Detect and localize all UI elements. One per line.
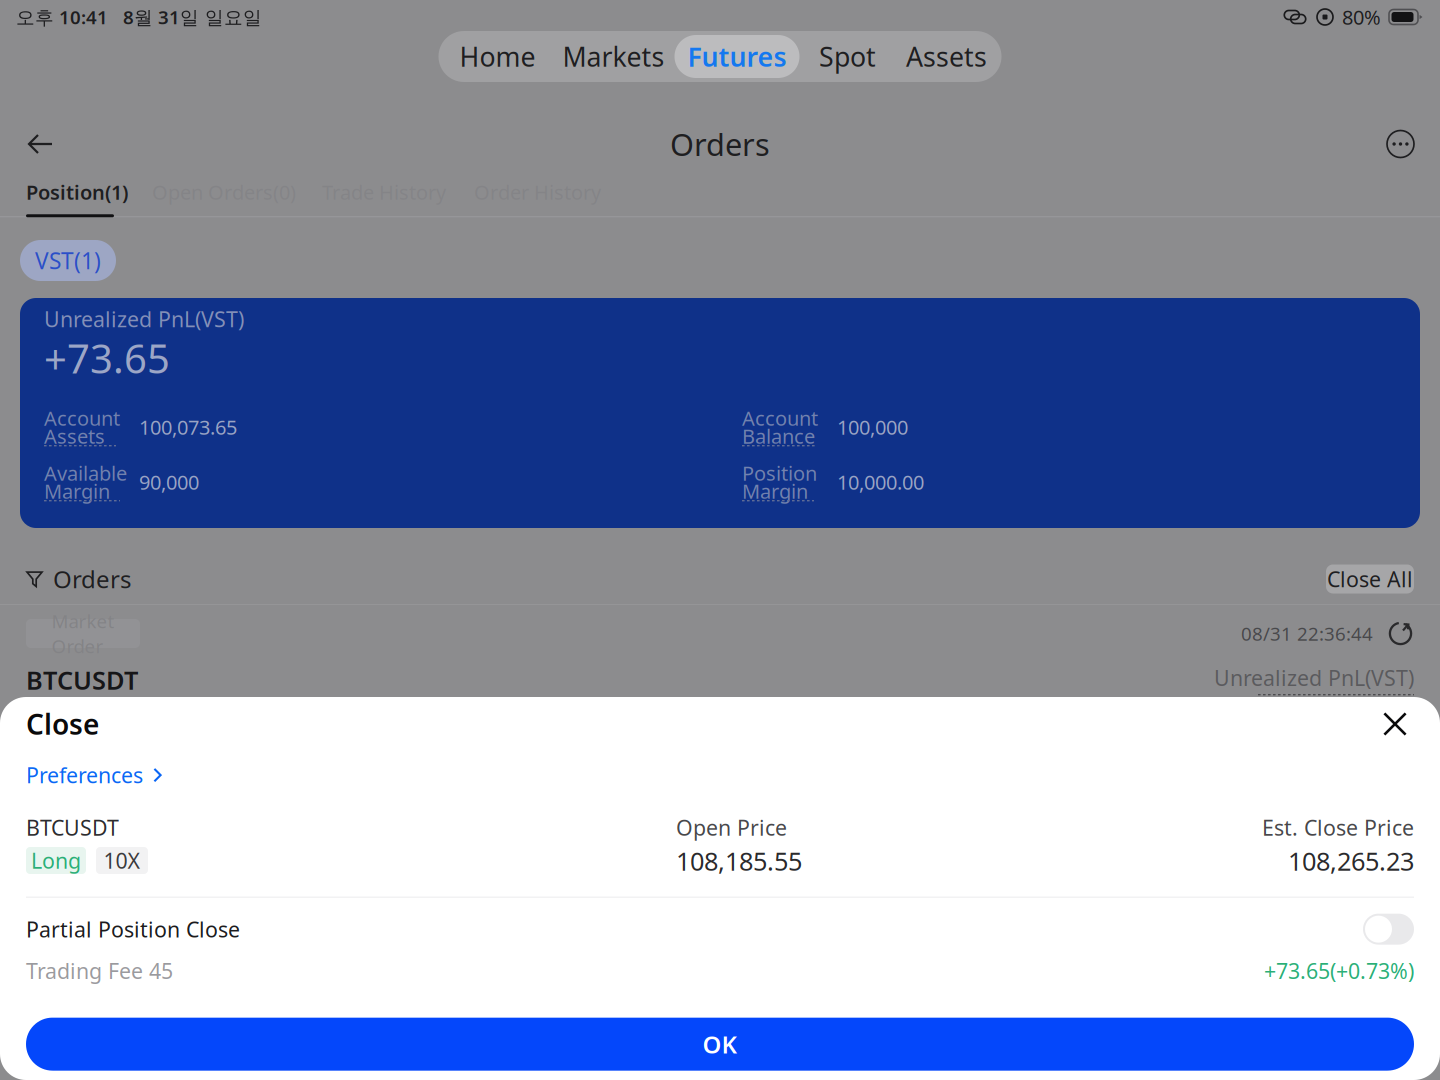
- staticText: Markets: [562, 39, 664, 74]
- staticText: Futures: [687, 39, 786, 74]
- staticText: Orders: [53, 563, 131, 595]
- button[interactable]: Close: [1376, 705, 1414, 743]
- button[interactable]: Futures: [674, 35, 799, 78]
- staticText: 08/31 22:36:44: [1241, 621, 1373, 646]
- staticText: Available: [44, 460, 127, 486]
- staticText: VST(1): [35, 245, 101, 275]
- staticText: 108,185.55: [676, 844, 802, 878]
- staticText: 10,000.00: [837, 469, 924, 495]
- staticText: Balance: [742, 423, 815, 449]
- staticText: Unrealized PnL(VST): [44, 305, 244, 333]
- button[interactable]: Orders: [26, 537, 131, 595]
- staticText: Market Order: [51, 609, 114, 658]
- button[interactable]: Assets: [895, 35, 997, 78]
- staticText: Partial Position Close: [26, 915, 240, 943]
- staticText: Home: [459, 39, 535, 74]
- staticText: Account: [742, 405, 818, 431]
- button[interactable]: Spot: [799, 35, 895, 78]
- button[interactable]: VST(1): [20, 240, 116, 281]
- staticText: 10X: [103, 846, 140, 875]
- staticText: Long: [31, 846, 81, 875]
- staticText: Est. Close Price: [1262, 813, 1414, 842]
- button[interactable]: More options: [1378, 121, 1423, 166]
- staticText: Margin: [742, 478, 808, 504]
- staticText: 90,000: [139, 469, 199, 495]
- staticText: Orders: [670, 124, 770, 164]
- button[interactable]: Position(1): [26, 179, 128, 205]
- staticText: Unrealized PnL(VST): [1214, 664, 1414, 692]
- button[interactable]: Home: [442, 35, 552, 78]
- button[interactable]: Markets: [552, 35, 674, 78]
- button[interactable]: OK: [26, 1018, 1414, 1071]
- button[interactable]: Preferences: [26, 760, 162, 790]
- staticText: Trading Fee 45: [26, 956, 173, 985]
- staticText: Assets: [906, 39, 987, 74]
- staticText: Position: [742, 460, 817, 486]
- button[interactable]: Partial Position Close: [1363, 914, 1414, 945]
- staticText: Assets: [44, 423, 105, 449]
- staticText: +73.65(+0.73%): [1264, 956, 1414, 985]
- staticText: BTCUSDT: [26, 813, 119, 842]
- staticText: Spot: [819, 39, 876, 74]
- staticText: 오후 10:41 8월 31일 일요일: [16, 5, 262, 29]
- staticText: Close All: [1327, 565, 1413, 593]
- staticText: 80%: [1342, 4, 1381, 30]
- staticText: Open Price: [676, 813, 787, 842]
- staticText: Preferences: [26, 761, 143, 789]
- staticText: 108,265.23: [1288, 844, 1414, 878]
- button[interactable]: Close All: [1326, 538, 1414, 593]
- staticText: Margin: [44, 478, 110, 504]
- staticText: 100,000: [837, 414, 908, 440]
- staticText: OK: [702, 1028, 737, 1060]
- staticText: BTCUSDT: [26, 663, 138, 697]
- staticText: Close: [26, 705, 99, 743]
- staticText: Position(1): [26, 179, 128, 205]
- button[interactable]: Back: [18, 124, 63, 164]
- staticText: 100,073.65: [139, 414, 237, 440]
- staticText: +73.65: [44, 331, 170, 384]
- staticText: Account: [44, 405, 120, 431]
